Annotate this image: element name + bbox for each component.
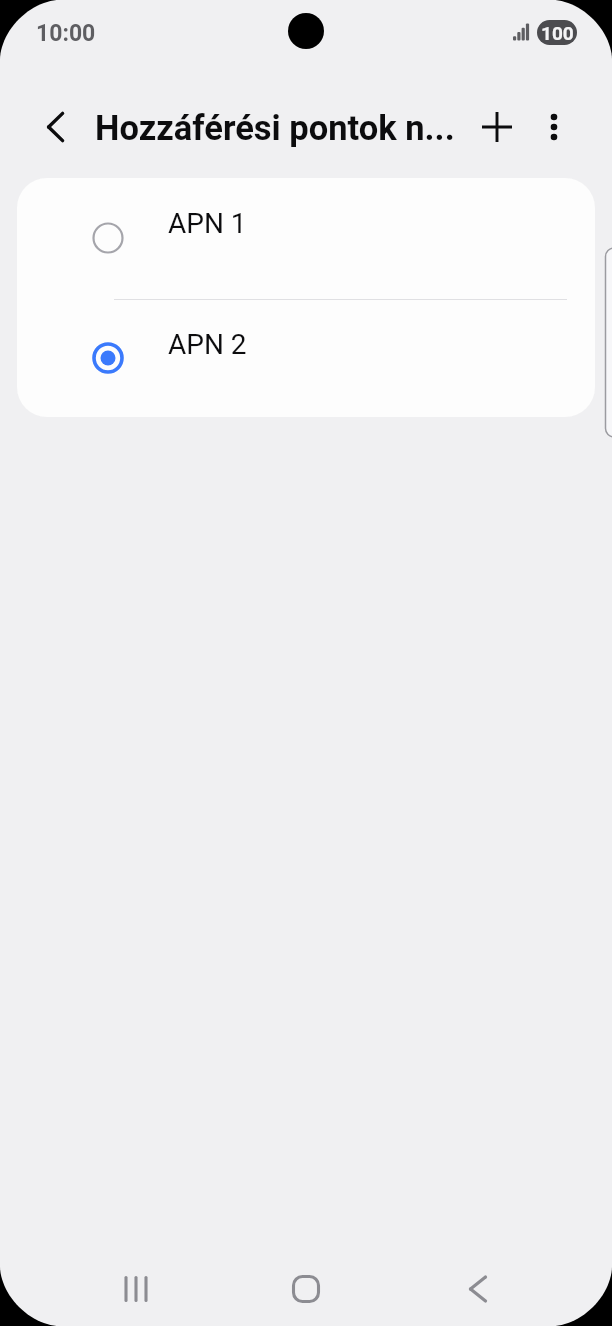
button[interactable]: APN 2 — [17, 299, 595, 417]
button[interactable]: APN 1 — [17, 178, 595, 297]
staticText: 100 — [541, 22, 574, 44]
button[interactable]: Add — [472, 102, 522, 152]
button[interactable]: More options — [529, 102, 579, 152]
button[interactable]: Recent apps — [96, 1249, 176, 1326]
button[interactable]: Navigate up — [31, 102, 81, 152]
staticText: APN 1 — [168, 207, 247, 240]
staticText: 10:00 — [36, 20, 96, 47]
staticText: Hozzáférési pontok n... — [95, 108, 455, 148]
button[interactable]: Back — [438, 1249, 518, 1326]
button[interactable]: Home — [266, 1249, 346, 1326]
staticText: APN 2 — [168, 328, 247, 361]
